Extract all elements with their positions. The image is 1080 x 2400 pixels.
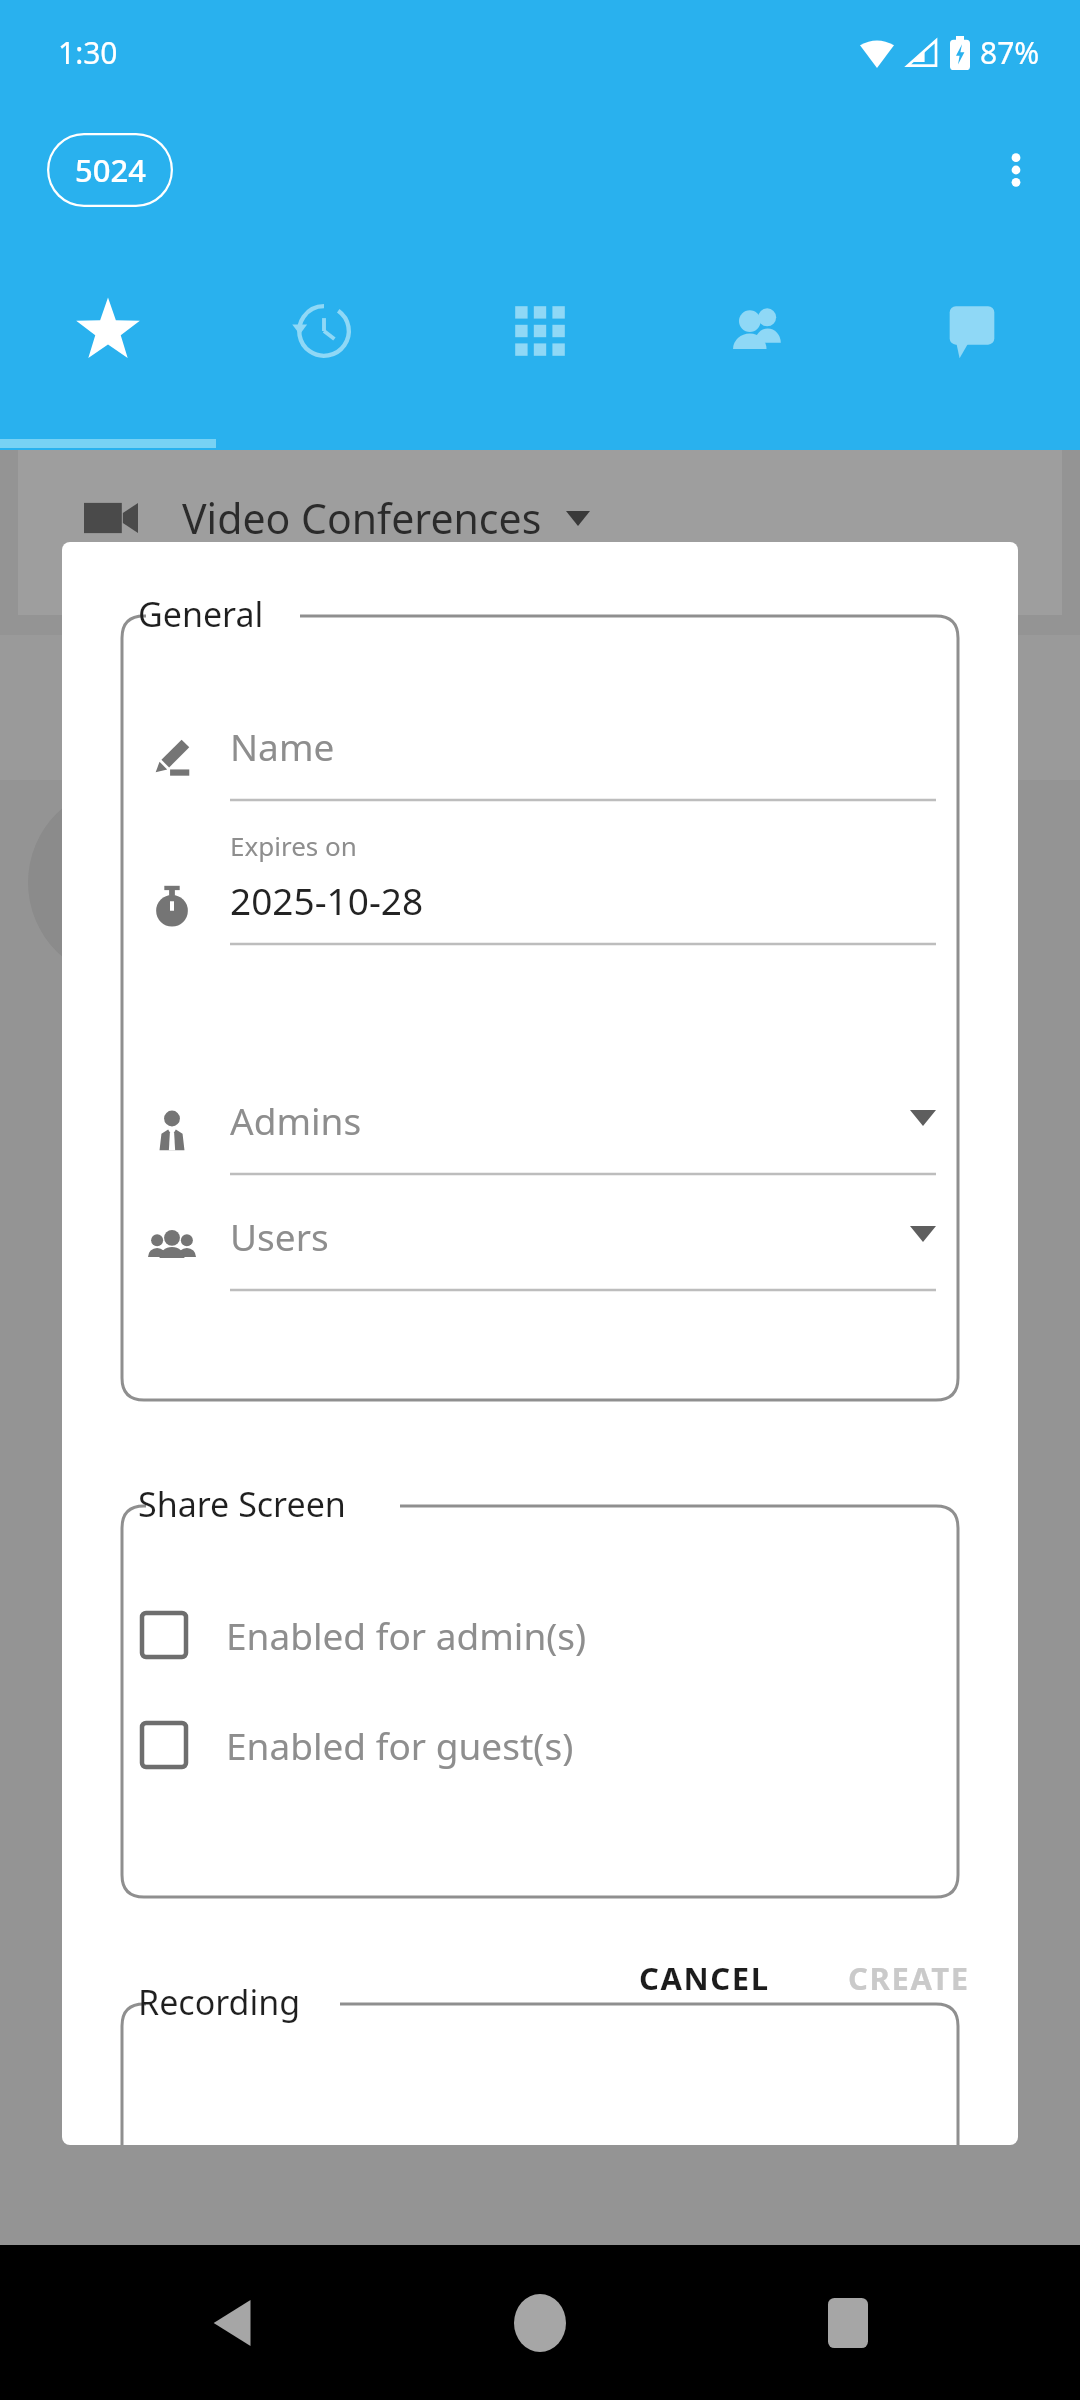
staticText: CREATE bbox=[848, 1957, 970, 1999]
button[interactable]: Dialpad bbox=[432, 235, 648, 450]
staticText: Expires on bbox=[230, 828, 357, 863]
staticText: Enabled for guest(s) bbox=[226, 1720, 574, 1770]
button[interactable]: More options bbox=[974, 128, 1058, 212]
button[interactable]: Recent apps bbox=[773, 2248, 923, 2398]
staticText: 87% bbox=[980, 32, 1040, 73]
button[interactable]: CREATE bbox=[822, 1939, 996, 2017]
staticText: 1:30 bbox=[58, 32, 118, 73]
staticText: Name bbox=[230, 721, 335, 771]
button[interactable]: Recents bbox=[216, 235, 432, 450]
staticText: CANCEL bbox=[639, 1957, 770, 1999]
button[interactable]: Contacts bbox=[648, 235, 864, 450]
button[interactable]: Expires on bbox=[230, 828, 936, 946]
staticText: Users bbox=[230, 1211, 329, 1261]
staticText: Enabled for admin(s) bbox=[226, 1610, 587, 1660]
button[interactable]: 5024 bbox=[47, 133, 173, 207]
button[interactable]: Messages bbox=[864, 235, 1080, 450]
button[interactable]: Admins bbox=[230, 1084, 936, 1176]
button[interactable]: Favorites bbox=[0, 235, 216, 450]
staticText: Video Conferences bbox=[182, 490, 542, 546]
button[interactable]: Name bbox=[230, 710, 936, 802]
button[interactable]: Home bbox=[465, 2248, 615, 2398]
button[interactable]: Back bbox=[158, 2248, 308, 2398]
button[interactable]: Enabled for guest(s) bbox=[142, 1720, 938, 1770]
staticText: 2025-10-28 bbox=[230, 875, 424, 925]
button[interactable]: CANCEL bbox=[613, 1939, 796, 2017]
staticText: Recording bbox=[138, 1979, 301, 2025]
staticText: Share Screen bbox=[138, 1481, 346, 1527]
staticText: Admins bbox=[230, 1095, 362, 1145]
button[interactable]: Users bbox=[230, 1200, 936, 1292]
staticText: 5024 bbox=[75, 149, 146, 191]
staticText: General bbox=[138, 591, 264, 637]
button[interactable]: Enabled for admin(s) bbox=[142, 1610, 938, 1660]
